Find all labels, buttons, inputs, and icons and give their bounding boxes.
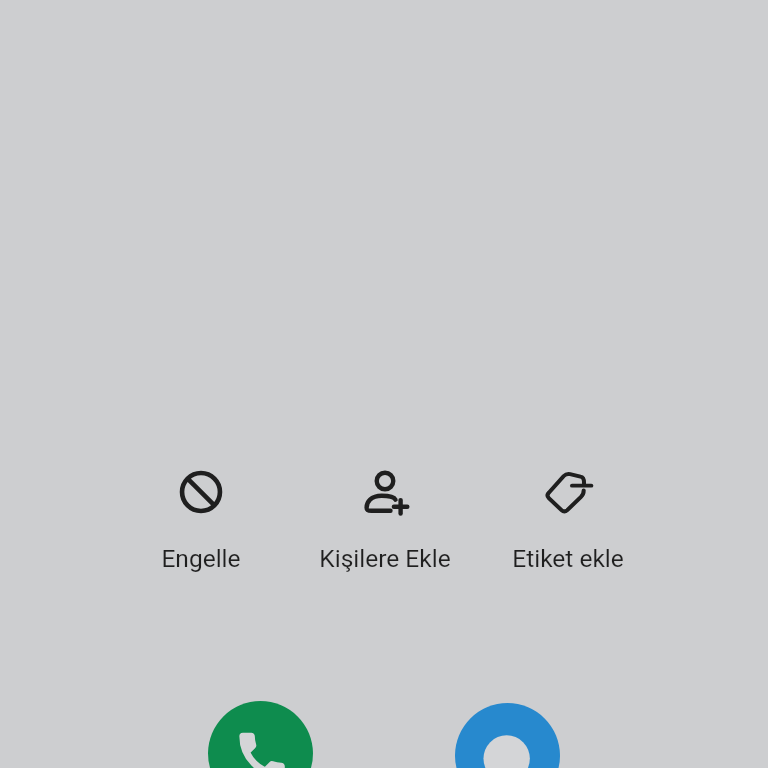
button[interactable]: Kişilere Ekle bbox=[292, 465, 477, 573]
staticText: Etiket ekle bbox=[512, 544, 624, 573]
staticText: Engelle bbox=[161, 544, 241, 573]
staticText: Kişilere Ekle bbox=[319, 544, 451, 573]
button[interactable]: Engelle bbox=[108, 465, 293, 573]
button[interactable]: Call bbox=[208, 701, 313, 768]
button[interactable]: Open contact bbox=[455, 703, 560, 768]
button[interactable]: Etiket ekle bbox=[475, 465, 660, 573]
